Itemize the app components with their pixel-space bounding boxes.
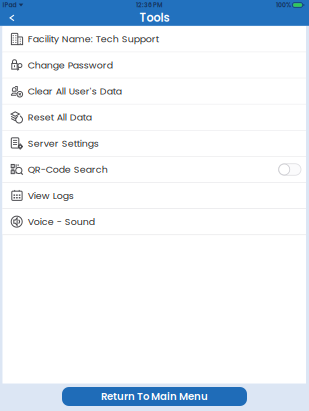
staticText: Voice - Sound [28, 215, 95, 228]
staticText: Clear All User's Data [28, 85, 122, 98]
button[interactable]: Voice - Sound [2, 209, 306, 234]
button[interactable]: Clear All User's Data [2, 78, 306, 104]
button[interactable]: Change Password [2, 52, 306, 78]
staticText: Return To Main Menu [101, 389, 208, 404]
button[interactable]: Back [0, 10, 19, 26]
button[interactable]: Return To Main Menu [62, 387, 247, 406]
staticText: iPad [2, 1, 16, 9]
button[interactable]: Server Settings [2, 131, 306, 156]
button[interactable]: QR-Code Search [2, 157, 306, 182]
staticText: View Logs [28, 189, 74, 202]
staticText: 12:36 PM [136, 1, 163, 9]
button[interactable]: Reset All Data [2, 105, 306, 130]
staticText: Server Settings [28, 137, 99, 150]
staticText: QR-Code Search [28, 163, 108, 176]
staticText: Tools [139, 10, 169, 26]
staticText: Reset All Data [28, 111, 92, 124]
staticText: 100% [276, 1, 291, 9]
staticText: Facility Name: Tech Support [28, 32, 159, 46]
button[interactable]: Facility Name: Tech Support [2, 26, 306, 52]
staticText: Change Password [28, 58, 113, 72]
button[interactable]: View Logs [2, 183, 306, 208]
